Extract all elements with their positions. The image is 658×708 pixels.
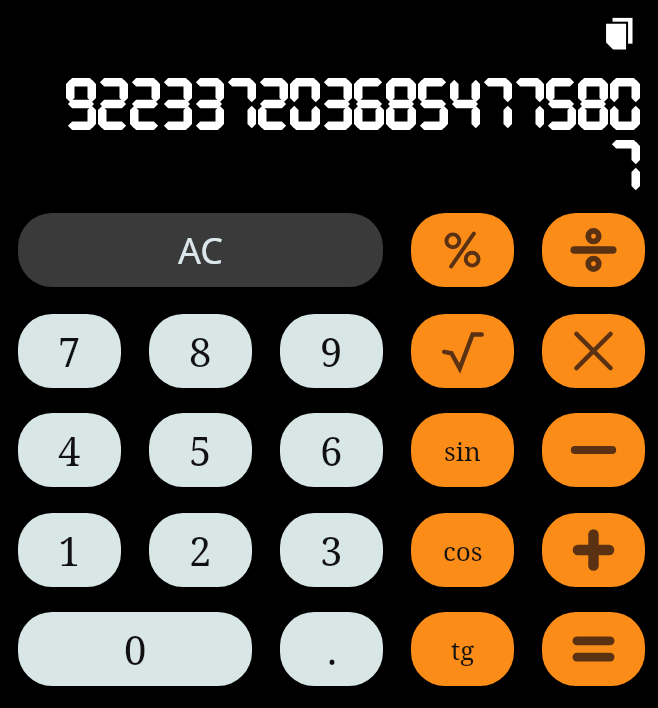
staticText: 3 [320,523,343,577]
button[interactable]: 1 [18,513,121,587]
button[interactable]: 6 [280,413,383,487]
staticText: 1 [58,523,81,577]
staticText: tg [451,632,475,667]
button[interactable]: 7 [18,314,121,388]
staticText: 0 [124,622,147,676]
button[interactable]: . [280,612,383,686]
button[interactable]: tg [411,612,514,686]
button[interactable]: cos [411,513,514,587]
staticText: 8 [189,324,212,378]
button[interactable]: Subtract [542,413,645,487]
button[interactable]: Copy result [592,8,644,60]
button[interactable]: 3 [280,513,383,587]
button[interactable]: Multiply [542,314,645,388]
staticText: 6 [320,423,343,477]
button[interactable]: Equals [542,612,645,686]
button[interactable]: Percent [411,213,514,287]
staticText: 7 [58,324,81,378]
button[interactable]: Divide [542,213,645,287]
staticText: 9 [320,324,343,378]
staticText: 5 [189,423,212,477]
button[interactable]: 9 [280,314,383,388]
button[interactable]: 0 [18,612,252,686]
button[interactable]: sin [411,413,514,487]
button[interactable]: 4 [18,413,121,487]
button[interactable]: 2 [149,513,252,587]
button[interactable]: 5 [149,413,252,487]
button[interactable]: Add [542,513,645,587]
staticText: sin [444,433,481,468]
staticText: cos [443,533,483,568]
button[interactable]: AC [18,213,383,287]
button[interactable]: 8 [149,314,252,388]
staticText: . [327,622,337,676]
button[interactable]: Square root [411,314,514,388]
staticText: 4 [58,423,81,477]
staticText: AC [178,226,224,275]
staticText: 2 [189,523,212,577]
